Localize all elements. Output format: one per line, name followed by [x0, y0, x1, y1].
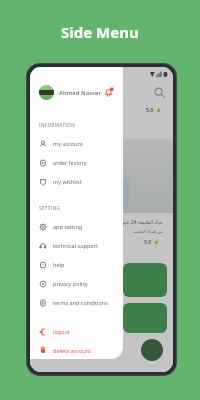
button[interactable]: order history: [30, 153, 123, 172]
other: Search: [154, 87, 165, 98]
staticText: 5.0: [144, 239, 152, 246]
staticText: delete account: [53, 347, 92, 354]
button[interactable]: technical support: [30, 236, 123, 255]
button[interactable]: app setting: [30, 217, 123, 236]
staticText: logout: [53, 328, 70, 335]
button[interactable]: help: [30, 255, 123, 274]
staticText: privacy policy: [53, 280, 88, 287]
staticText: من المياه المعدنية: [133, 229, 163, 234]
button[interactable]: Ahmed Nasser: [39, 85, 114, 100]
staticText: 5.0: [146, 107, 154, 114]
staticText: SETTING: [39, 205, 61, 211]
button[interactable]: my wishlist: [30, 172, 123, 191]
button[interactable]: Notifications: [103, 87, 114, 98]
staticText: terms and conditions: [53, 299, 108, 306]
button[interactable]: my account: [30, 134, 123, 153]
staticText: my account: [53, 140, 83, 147]
staticText: my wishlist: [53, 178, 82, 185]
staticText: مياه الطبيعة 24 عبوة: [120, 219, 163, 226]
staticText: help: [53, 261, 65, 268]
staticText: Side Menu: [61, 22, 139, 42]
button[interactable]: terms and conditions: [30, 293, 123, 312]
button[interactable]: logout: [30, 322, 123, 341]
button[interactable]: privacy policy: [30, 274, 123, 293]
staticText: technical support: [53, 242, 98, 249]
staticText: Ahmed Nasser: [59, 89, 102, 97]
staticText: app setting: [53, 223, 83, 230]
staticText: order history: [53, 159, 87, 166]
button[interactable]: delete account: [30, 341, 123, 359]
staticText: INFORMATION: [39, 122, 76, 128]
